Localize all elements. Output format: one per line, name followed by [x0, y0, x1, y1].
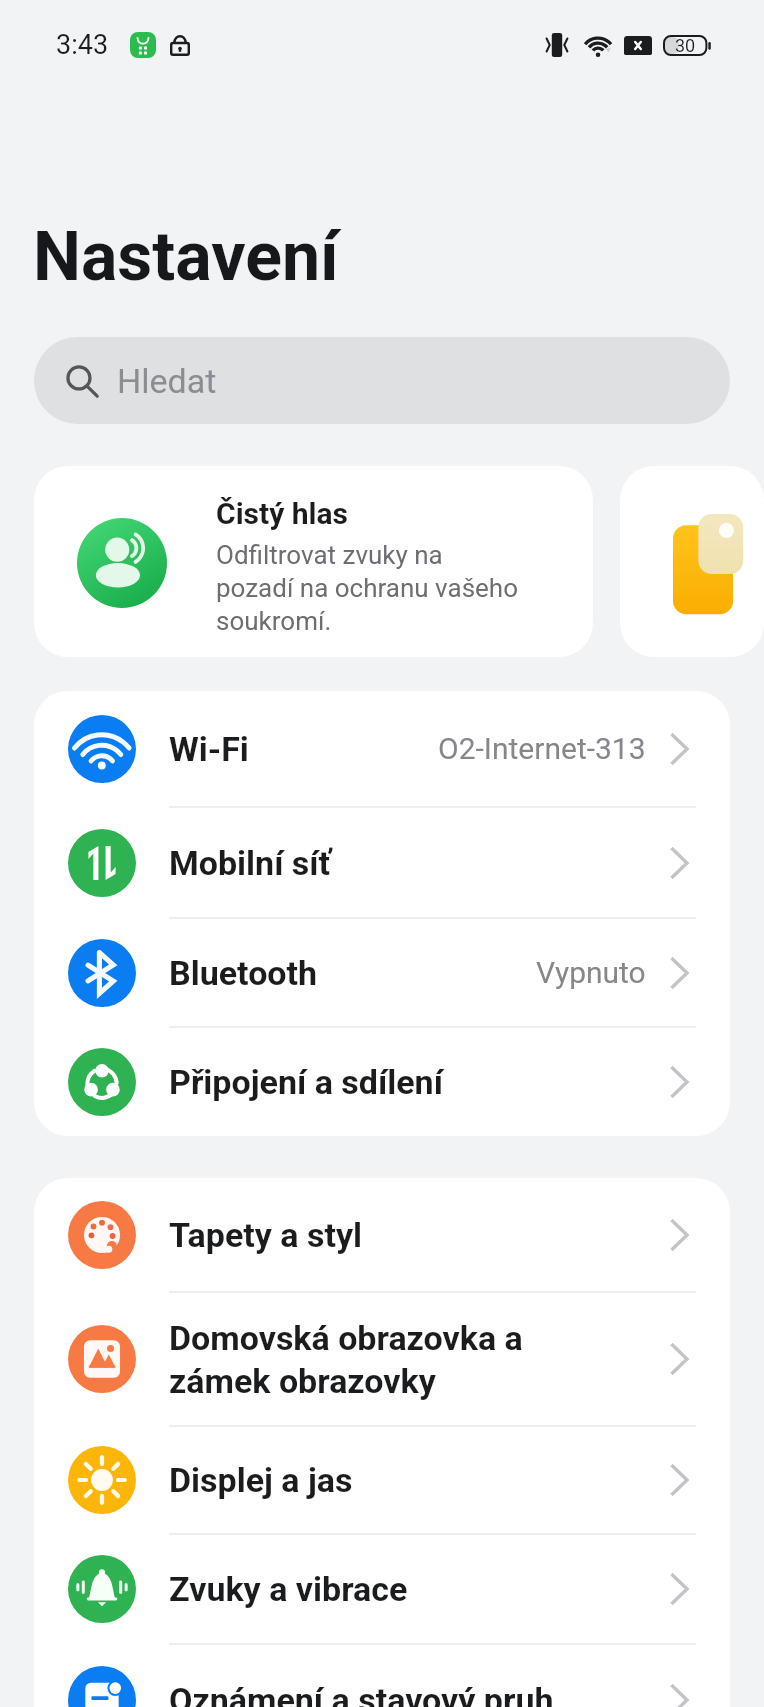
staticText: Oznámení a stavový pruh	[169, 1680, 554, 1707]
button[interactable]: Bluetooth	[34, 919, 730, 1026]
staticText: Hledat	[117, 361, 217, 401]
staticText: Vypnuto	[536, 955, 646, 990]
staticText: Wi-Fi	[169, 729, 249, 769]
button[interactable]: Připojení a sdílení	[34, 1028, 730, 1136]
staticText: Zvuky a vibrace	[169, 1569, 408, 1609]
staticText: Domovská obrazovka a zámek obrazovky	[169, 1318, 523, 1401]
staticText: 3:43	[56, 29, 109, 61]
staticText: Nastavení	[33, 217, 339, 297]
button[interactable]: Čistý hlas	[34, 466, 593, 657]
staticText: O2-Internet-313	[438, 731, 646, 766]
button[interactable]: Zvuky a vibrace	[34, 1535, 730, 1643]
button[interactable]: Hledat	[34, 337, 730, 424]
button[interactable]: Domovská obrazovka a zámek obrazovky	[34, 1293, 730, 1425]
staticText: Mobilní síť	[169, 843, 331, 883]
staticText: Tapety a styl	[169, 1215, 363, 1255]
button[interactable]: Oznámení a stavový pruh	[34, 1645, 730, 1707]
staticText: Bluetooth	[169, 953, 318, 993]
staticText: Displej a jas	[169, 1460, 353, 1500]
button[interactable]: Mobilní síť	[34, 808, 730, 917]
staticText: Připojení a sdílení	[169, 1062, 443, 1102]
button[interactable]: Displej a jas	[34, 1427, 730, 1533]
staticText: Odfiltrovat zvuky na pozadí na ochranu v…	[216, 540, 519, 636]
button[interactable]: Rozdělená obrazovka	[620, 466, 764, 657]
button[interactable]: Wi-Fi	[34, 691, 730, 806]
staticText: Čistý hlas	[216, 496, 348, 531]
staticText: 30	[675, 35, 696, 56]
button[interactable]: Tapety a styl	[34, 1178, 730, 1291]
